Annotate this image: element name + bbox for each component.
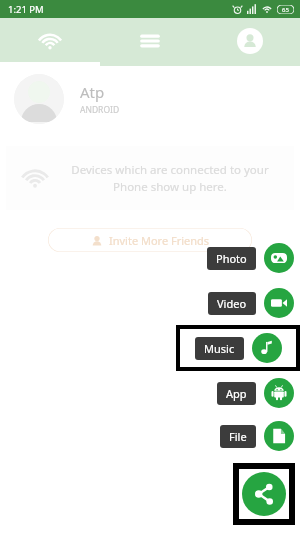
staticText: 1:21 PM [8, 3, 44, 16]
staticText: Video [217, 296, 247, 311]
button[interactable]: Share [242, 472, 286, 516]
staticText: Atp [80, 82, 105, 102]
button[interactable]: Invite More Friends [48, 228, 252, 252]
button[interactable]: App [264, 378, 294, 408]
button[interactable]: File [264, 421, 294, 451]
staticText: 65 [282, 6, 289, 14]
button[interactable]: Photo [207, 247, 256, 270]
button[interactable]: Menu [100, 18, 200, 64]
button[interactable]: Video [208, 292, 256, 315]
button[interactable]: Connect [0, 18, 100, 64]
staticText: App [226, 386, 247, 401]
staticText: Music [204, 341, 235, 356]
button[interactable]: Music [195, 337, 244, 360]
staticText: Photo [216, 251, 247, 266]
staticText: File [229, 429, 247, 444]
button[interactable]: File [220, 425, 256, 448]
staticText: ANDROID [80, 104, 120, 116]
button[interactable]: Profile [200, 18, 300, 64]
button[interactable]: Video [264, 288, 294, 318]
button[interactable]: App [217, 382, 256, 405]
button[interactable]: Photo [264, 243, 294, 273]
button[interactable]: Music [252, 333, 282, 363]
staticText: Devices which are connected to your Phon… [64, 162, 276, 194]
staticText: Invite More Friends [109, 233, 210, 248]
button[interactable]: Atp [0, 68, 300, 130]
